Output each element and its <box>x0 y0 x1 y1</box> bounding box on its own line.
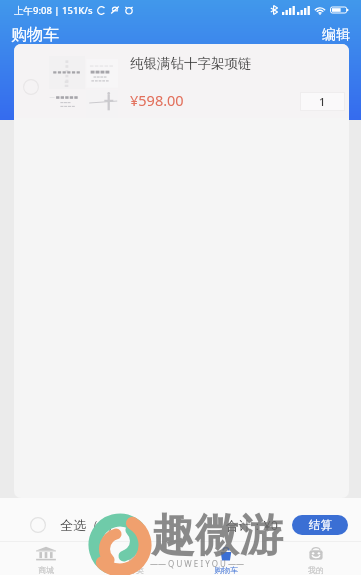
staticText: 购物车 <box>214 565 238 575</box>
button[interactable]: 我的 <box>271 542 361 575</box>
staticText: —— Q U W E I Y O U —— <box>150 558 245 569</box>
staticText: 纯银满钻十字架项链 <box>130 55 252 72</box>
button[interactable]: 结算 <box>292 515 348 535</box>
staticText: 结算 <box>309 518 332 532</box>
staticText: 合计：¥0 <box>226 517 278 534</box>
staticText: 1 <box>319 94 326 109</box>
button[interactable]: 购物车 <box>181 542 271 575</box>
button[interactable]: 分类 <box>91 542 181 575</box>
button[interactable]: 商城 <box>0 542 91 575</box>
staticText: 分类 <box>128 565 144 575</box>
staticText: 我的 <box>308 565 324 575</box>
staticText: 趣微游 <box>151 508 283 563</box>
button[interactable]: 编辑 <box>308 24 361 46</box>
staticText: 上午9:08 | 151K/s <box>14 4 93 17</box>
staticText: 购物车 <box>11 25 59 45</box>
button[interactable]: Quantity 1 <box>300 92 345 111</box>
staticText: ¥598.00 <box>130 90 184 110</box>
staticText: 全选（0） <box>60 516 120 534</box>
button[interactable]: 全选（0） <box>0 509 132 541</box>
button[interactable]: Select item <box>19 75 43 99</box>
staticText: 商城 <box>38 565 54 575</box>
staticText: 编辑 <box>322 26 350 44</box>
